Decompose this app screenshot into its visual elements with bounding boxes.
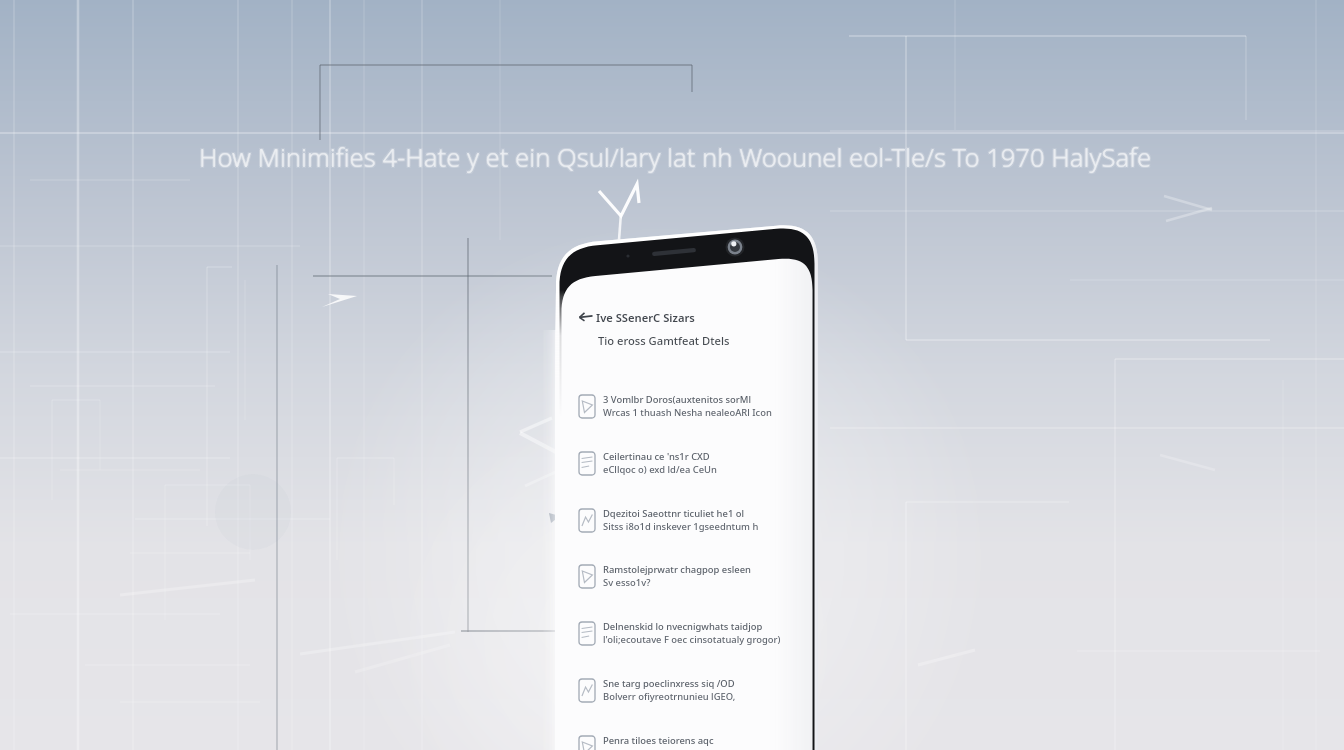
staticText: Ramstolejprwatr chagpop esleen [603, 563, 751, 576]
button[interactable]: Ceilertinau ce 'ns1r CXD [578, 451, 810, 491]
button[interactable]: Delnenskid lo nvecnigwhats taidjop [578, 621, 810, 661]
button[interactable]: Penra tiloes teiorens aqc [578, 735, 810, 750]
button[interactable]: 3 Vomlbr Doros(auxtenitos sorMl [578, 394, 810, 434]
button[interactable]: Sne targ poeclinxress siq /OD [578, 678, 810, 718]
staticText: Ive SSenerC Sizars [596, 310, 695, 325]
staticText: How Minimifies 4-Hate y et ein Qsul/lary… [199, 140, 1152, 175]
staticText: Tio eross Gamtfeat Dtels [598, 333, 730, 348]
staticText: How Minimifies 4-Hate y et ein Qsul/lary… [198, 141, 1151, 176]
staticText: Dqezitoi Saeottnr ticuliet he1 ol [603, 507, 744, 520]
staticText: Ceilertinau ce 'ns1r CXD [603, 450, 710, 463]
button[interactable]: Dqezitoi Saeottnr ticuliet he1 ol [578, 508, 810, 548]
staticText: l'oli;ecoutave F oec cinsotatualy grogor… [603, 633, 781, 646]
staticText: Delnenskid lo nvecnigwhats taidjop [603, 620, 763, 633]
button[interactable]: Ive SSenerC Sizars [596, 310, 695, 325]
staticText: How Minimifies 4-Hate y et ein Qsul/lary… [198, 139, 1151, 174]
button[interactable]: Back [578, 308, 594, 326]
staticText: Penra tiloes teiorens aqc [603, 734, 714, 747]
staticText: How Minimifies 4-Hate y et ein Qsul/lary… [200, 139, 1153, 174]
button[interactable]: Tio eross Gamtfeat Dtels [598, 333, 730, 348]
staticText: Sne targ poeclinxress siq /OD [603, 677, 735, 690]
staticText: Wrcas 1 thuash Nesha nealeoARl Icon [603, 406, 772, 419]
staticText: Sitss i8o1d inskever 1gseedntum h [603, 520, 759, 533]
staticText: Bolverr ofiyreotrnunieu lGEO, [603, 690, 736, 703]
staticText: Sv esso1v? [603, 576, 651, 589]
staticText: 3 Vomlbr Doros(auxtenitos sorMl [603, 393, 751, 406]
staticText: How Minimifies 4-Hate y et ein Qsul/lary… [200, 141, 1153, 176]
button[interactable]: Ramstolejprwatr chagpop esleen [578, 564, 810, 604]
staticText: eCllqoc o) exd ld/ea CeUn [603, 463, 717, 476]
